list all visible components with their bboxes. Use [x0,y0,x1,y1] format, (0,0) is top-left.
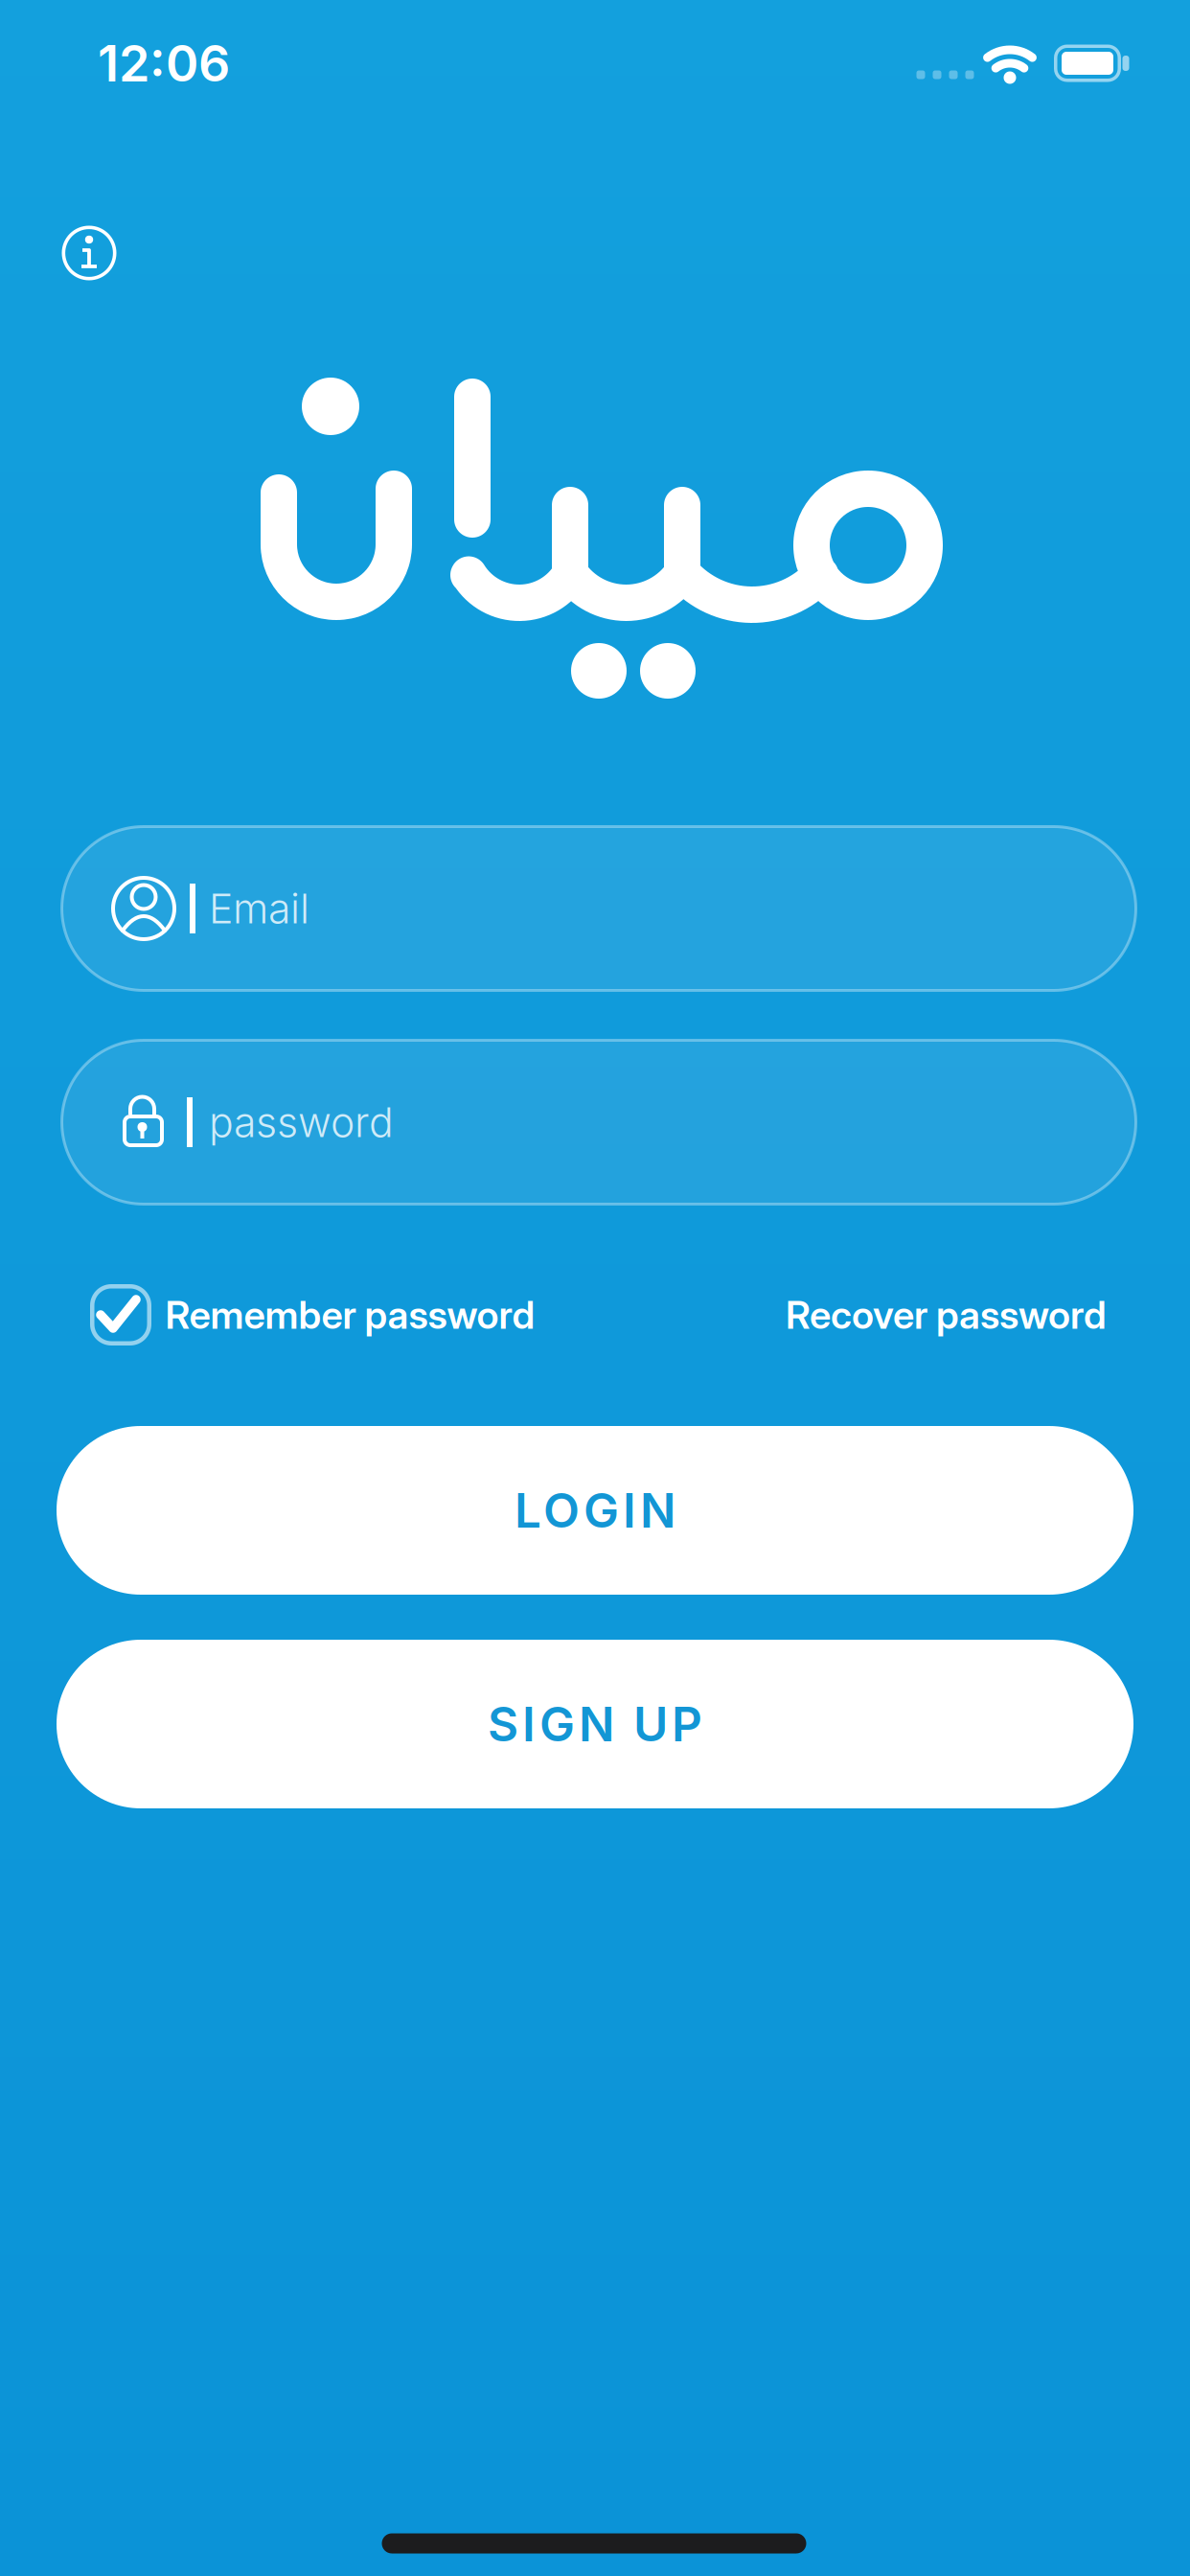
staticText: 12:06 [98,34,230,93]
staticText: SIGN UP [488,1696,702,1752]
staticText: Recover password [786,1292,1107,1337]
button[interactable]: Remember password [90,1276,755,1353]
button[interactable]: Email [60,825,1137,992]
staticText: Email [209,884,309,933]
staticText: password [209,1098,394,1146]
staticText: Remember password [165,1292,535,1337]
button[interactable]: Recover password [628,1276,1107,1353]
button[interactable]: LOGIN [57,1426,1133,1595]
button[interactable]: Info [51,215,127,291]
staticText: LOGIN [515,1482,675,1538]
button[interactable]: SIGN UP [57,1640,1133,1808]
button[interactable]: Password [60,1039,1137,1206]
